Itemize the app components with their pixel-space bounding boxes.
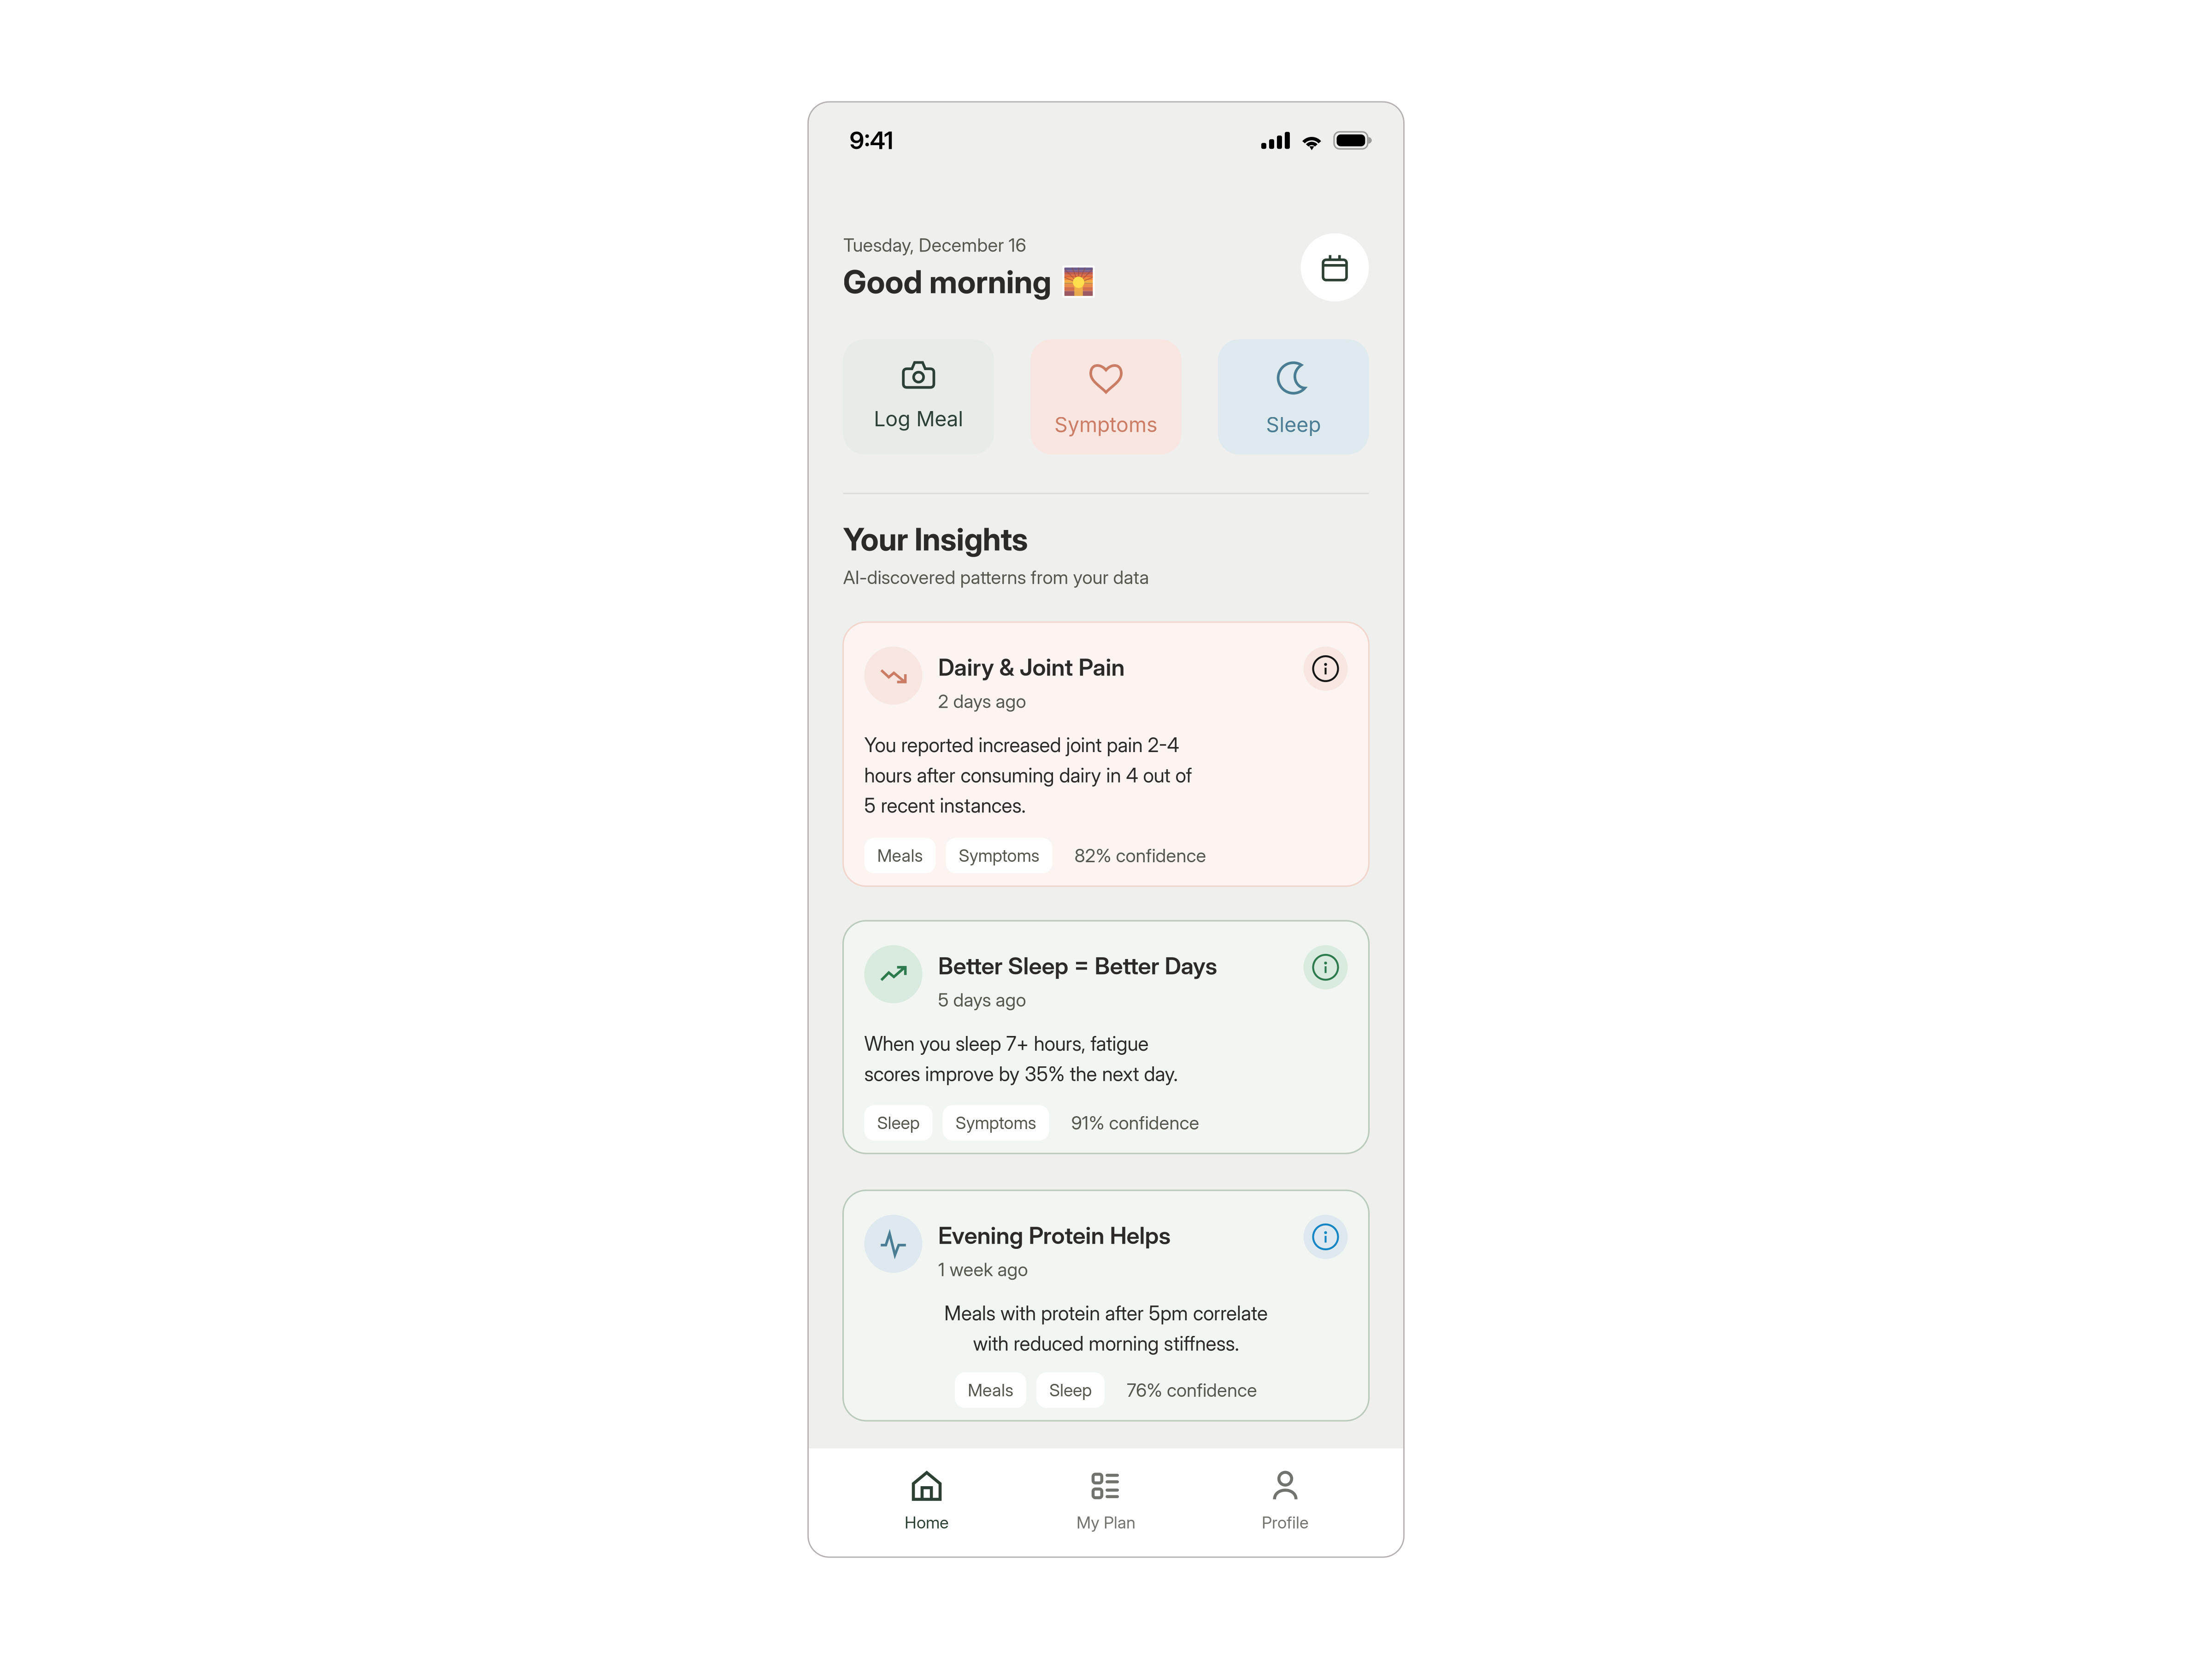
button[interactable]: Profile: [1196, 1471, 1375, 1532]
staticText: Meals with protein after 5pm correlate: [944, 1301, 1268, 1325]
staticText: Symptoms: [1054, 412, 1158, 437]
staticText: Tuesday, December 16: [843, 234, 1026, 256]
staticText: Evening Protein Helps: [938, 1221, 1171, 1250]
button[interactable]: Home: [837, 1471, 1016, 1532]
button[interactable]: Symptoms: [1031, 339, 1182, 454]
staticText: 1 week ago: [938, 1258, 1028, 1281]
staticText: My Plan: [1077, 1512, 1135, 1532]
staticText: Better Sleep = Better Days: [938, 952, 1217, 980]
button[interactable]: Dairy & Joint Pain: [843, 622, 1369, 886]
staticText: Dairy & Joint Pain: [938, 653, 1125, 681]
staticText: 9:41: [850, 126, 893, 155]
staticText: 76% confidence: [1127, 1379, 1257, 1401]
button[interactable]: Evening Protein Helps: [843, 1190, 1369, 1421]
button[interactable]: Better Sleep = Better Days: [843, 921, 1369, 1153]
staticText: with reduced morning stiffness.: [973, 1332, 1239, 1355]
staticText: Your Insights: [843, 520, 1028, 558]
staticText: hours after consuming dairy in 4 out of: [864, 763, 1192, 787]
staticText: Sleep: [1049, 1380, 1092, 1400]
staticText: Sleep: [1266, 412, 1321, 437]
button[interactable]: Calendar: [1301, 233, 1369, 301]
staticText: 91% confidence: [1071, 1112, 1199, 1134]
button[interactable]: Log Meal: [843, 339, 994, 454]
staticText: You reported increased joint pain 2-4: [864, 733, 1179, 757]
staticText: Meals: [968, 1380, 1013, 1400]
staticText: Profile: [1262, 1512, 1309, 1532]
staticText: When you sleep 7+ hours, fatigue: [864, 1032, 1149, 1055]
staticText: 82% confidence: [1074, 844, 1206, 867]
staticText: Good morning: [843, 263, 1051, 301]
staticText: Symptoms: [956, 1112, 1036, 1133]
staticText: 5 recent instances.: [864, 794, 1026, 817]
staticText: Symptoms: [959, 845, 1039, 866]
staticText: Sleep: [877, 1112, 920, 1133]
staticText: Meals: [877, 845, 923, 866]
staticText: Home: [905, 1512, 949, 1532]
staticText: scores improve by 35% the next day.: [864, 1062, 1178, 1086]
staticText: 5 days ago: [938, 989, 1026, 1011]
staticText: AI-discovered patterns from your data: [843, 566, 1149, 588]
staticText: 2 days ago: [938, 690, 1026, 712]
button[interactable]: My Plan: [1016, 1471, 1196, 1532]
staticText: Log Meal: [874, 406, 963, 431]
button[interactable]: Sleep: [1218, 339, 1369, 454]
